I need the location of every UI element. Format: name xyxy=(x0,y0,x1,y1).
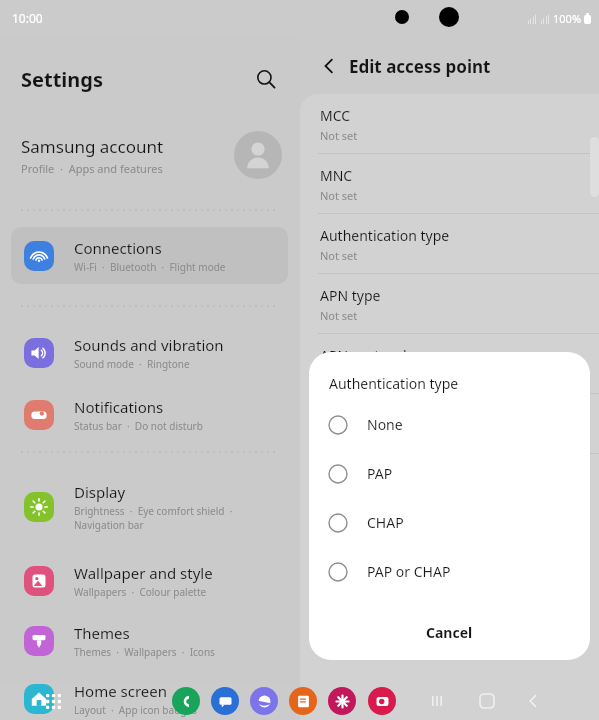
staticText: Status bar · Do not disturb xyxy=(74,419,203,433)
button[interactable]: note xyxy=(289,687,317,715)
staticText: Themes xyxy=(74,623,130,643)
staticText: PAP xyxy=(367,464,393,483)
staticText: Not set xyxy=(320,188,358,203)
button[interactable]: Back xyxy=(519,687,547,715)
staticText: Not set xyxy=(320,308,358,323)
button[interactable]: gal xyxy=(328,687,356,715)
button[interactable]: MCC xyxy=(300,94,599,154)
staticText: None xyxy=(367,415,403,434)
staticText: Wi-Fi · Bluetooth · Flight mode xyxy=(74,260,226,274)
staticText: APN protocol xyxy=(320,346,407,365)
staticText: Profile · Apps and features xyxy=(21,161,163,176)
button[interactable]: CHAP xyxy=(309,498,590,547)
button[interactable]: PAP xyxy=(309,449,590,498)
staticText: Settings xyxy=(21,66,103,93)
button[interactable]: Home screen xyxy=(0,671,300,720)
staticText: Not set xyxy=(320,368,358,383)
staticText: 100% xyxy=(553,11,582,26)
button[interactable]: Sounds and vibration xyxy=(0,325,300,381)
button[interactable]: APN roaming protocol xyxy=(300,394,599,454)
staticText: Authentication type xyxy=(329,374,459,393)
button[interactable]: msg xyxy=(211,687,239,715)
button[interactable]: web xyxy=(250,687,278,715)
staticText: MCC xyxy=(320,106,351,125)
staticText: Cancel xyxy=(426,623,473,642)
staticText: Sound mode · Ringtone xyxy=(74,357,190,371)
button[interactable]: None xyxy=(309,400,590,449)
button[interactable]: Cancel xyxy=(309,604,590,660)
staticText: CHAP xyxy=(367,513,404,532)
button[interactable]: APN type xyxy=(300,274,599,334)
staticText: Edit access point xyxy=(349,55,491,78)
button[interactable]: Back xyxy=(312,49,346,83)
staticText: Not set xyxy=(320,428,358,443)
staticText: Display xyxy=(74,482,126,502)
staticText: Connections xyxy=(74,238,162,258)
staticText: Not set xyxy=(320,128,358,143)
staticText: Wallpapers · Colour palette xyxy=(74,585,207,599)
staticText: Not set xyxy=(320,248,358,263)
button[interactable]: cam xyxy=(368,687,396,715)
button[interactable]: APN protocol xyxy=(300,334,599,394)
staticText: Notifications xyxy=(74,397,164,417)
button[interactable]: Search xyxy=(248,61,284,97)
staticText: Layout · App icon badges xyxy=(74,703,197,717)
button[interactable]: Authentication type xyxy=(300,214,599,274)
staticText: Samsung account xyxy=(21,135,164,158)
button[interactable]: Display xyxy=(0,479,300,535)
button[interactable]: Recents xyxy=(423,687,451,715)
button[interactable]: Apps xyxy=(39,687,67,715)
button[interactable]: PAP or CHAP xyxy=(309,547,590,596)
button[interactable]: Notifications xyxy=(0,387,300,443)
staticText: Wallpaper and style xyxy=(74,563,213,583)
staticText: PAP or CHAP xyxy=(367,562,451,581)
button[interactable]: Themes xyxy=(0,613,300,669)
button[interactable]: Home xyxy=(473,687,501,715)
button[interactable]: Samsung account xyxy=(0,122,300,188)
staticText: 10:00 xyxy=(12,10,43,26)
staticText: MNC xyxy=(320,166,353,185)
staticText: Themes · Wallpapers · Icons xyxy=(74,645,215,659)
staticText: Brightness · Eye comfort shield · Naviga… xyxy=(74,504,233,532)
button[interactable]: MNC xyxy=(300,154,599,214)
staticText: Bearer xyxy=(320,466,365,485)
button[interactable]: Wallpaper and style xyxy=(0,553,300,609)
staticText: APN type xyxy=(320,286,381,305)
staticText: APN roaming protocol xyxy=(320,406,467,425)
staticText: Home screen xyxy=(74,681,168,701)
staticText: Authentication type xyxy=(320,226,450,245)
button[interactable]: phone xyxy=(172,687,200,715)
button[interactable]: Connections xyxy=(11,227,288,284)
button[interactable]: Bearer xyxy=(300,454,599,514)
staticText: Sounds and vibration xyxy=(74,335,224,355)
